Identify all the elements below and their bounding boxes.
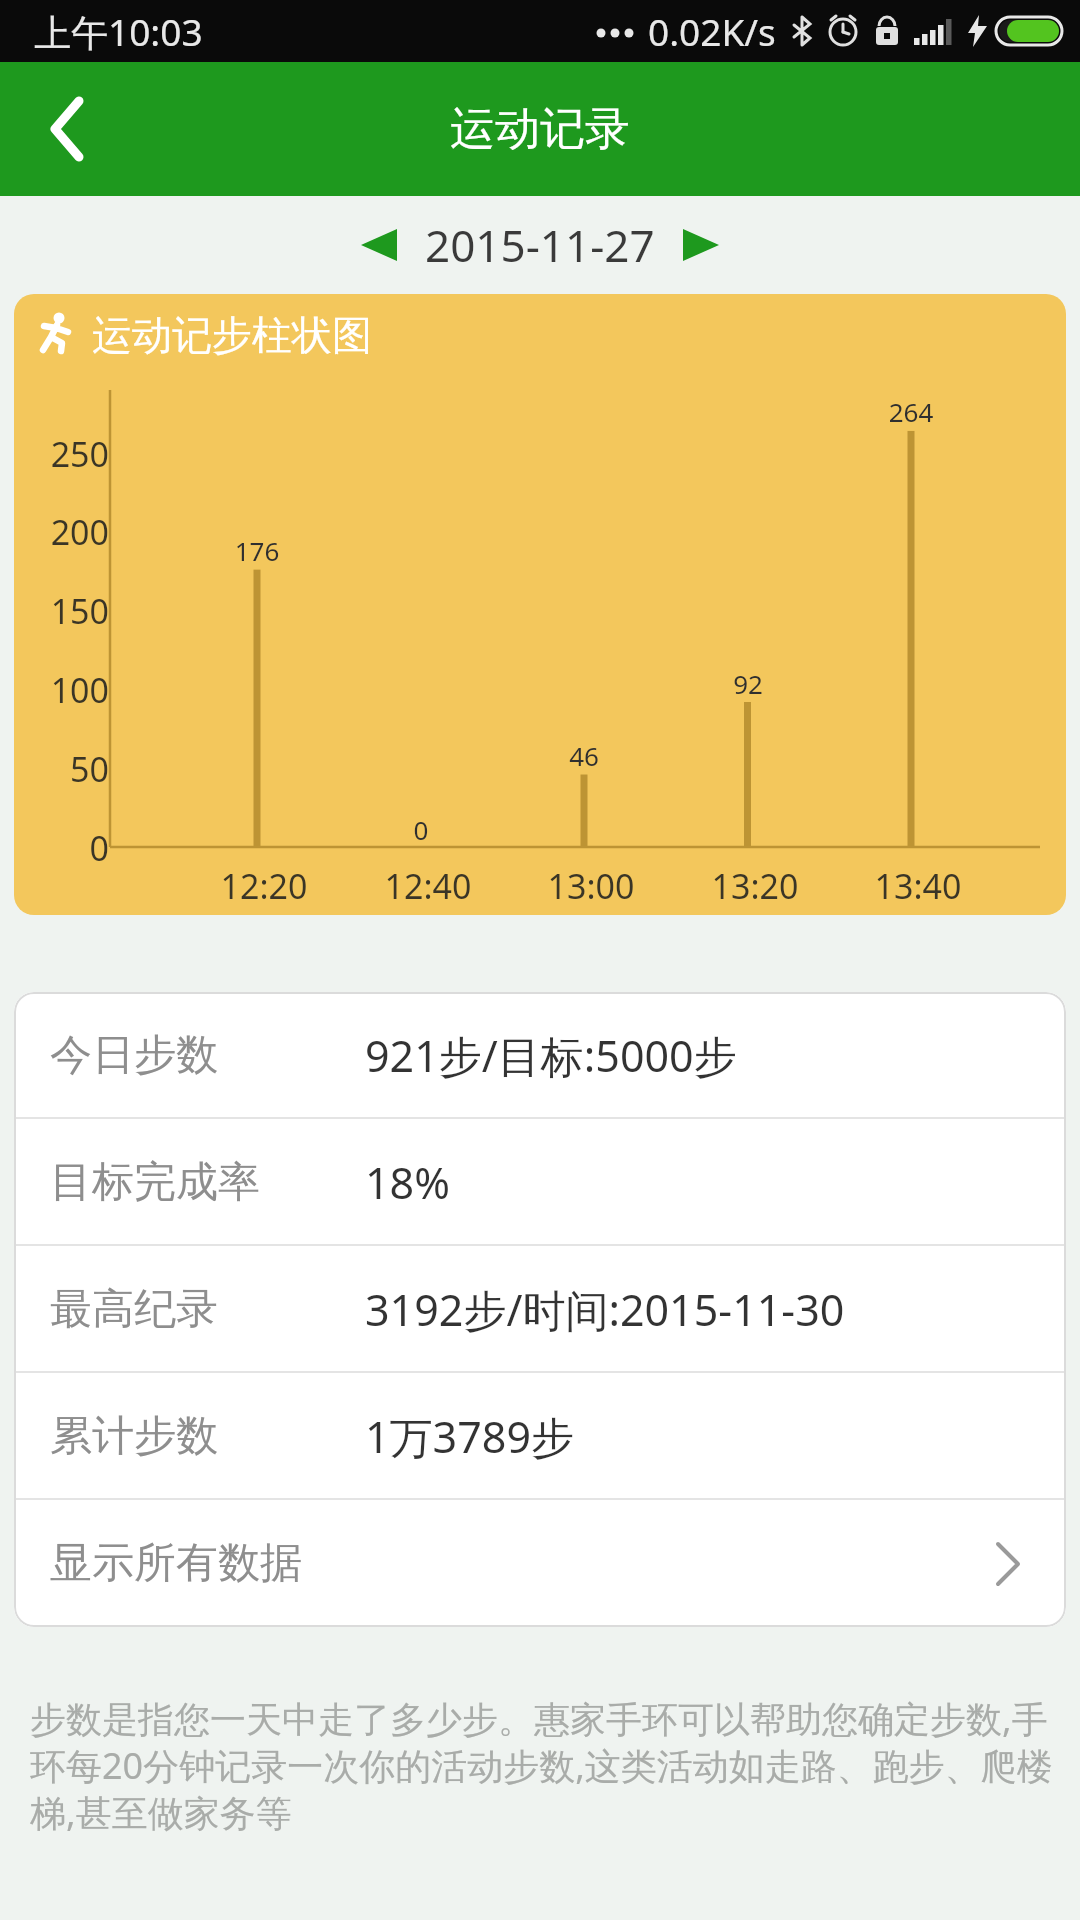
staticText: 13:00 [511,863,671,909]
staticText: 运动记步柱状图 [92,310,372,358]
button[interactable]: 累计步数 [14,1373,1066,1500]
staticText: 250 [29,431,109,477]
staticText: 今日步数 [50,1029,218,1082]
button[interactable]: 目标完成率 [14,1119,1066,1246]
staticText: 0 [361,812,481,847]
staticText: 1万3789步 [365,1407,574,1466]
staticText: 上午10:03 [34,6,203,57]
staticText: 2015-11-27 [425,215,655,275]
staticText: 3192步/时间:2015-11-30 [365,1280,845,1339]
staticText: 50 [29,746,109,792]
staticText: 0 [29,825,109,871]
staticText: 264 [851,394,971,429]
staticText: 0.02K/s [648,6,776,56]
staticText: 46 [524,738,644,773]
button[interactable]: 今日步数 [14,992,1066,1119]
button[interactable] [0,62,120,196]
button[interactable] [351,219,407,271]
staticText: 18% [365,1153,450,1212]
staticText: 13:20 [675,863,835,909]
staticText: 12:40 [348,863,508,909]
staticText: 100 [29,667,109,713]
staticText: 步数是指您一天中走了多少步。惠家手环可以帮助您确定步数,手 环每20分钟记录一次… [30,1694,1053,1837]
button[interactable]: 显示所有数据 [14,1500,1066,1627]
staticText: 13:40 [838,863,998,909]
staticText: 150 [29,588,109,634]
button[interactable] [673,219,729,271]
staticText: 累计步数 [50,1410,218,1463]
staticText: 显示所有数据 [50,1537,302,1590]
staticText: 92 [688,666,808,701]
staticText: 最高纪录 [50,1283,218,1336]
button[interactable]: 最高纪录 [14,1246,1066,1373]
staticText: 目标完成率 [50,1156,260,1209]
staticText: 12:20 [184,863,344,909]
staticText: 200 [29,509,109,555]
staticText: 176 [197,533,317,568]
staticText: 运动记录 [450,101,630,158]
staticText: 921步/目标:5000步 [365,1026,737,1085]
